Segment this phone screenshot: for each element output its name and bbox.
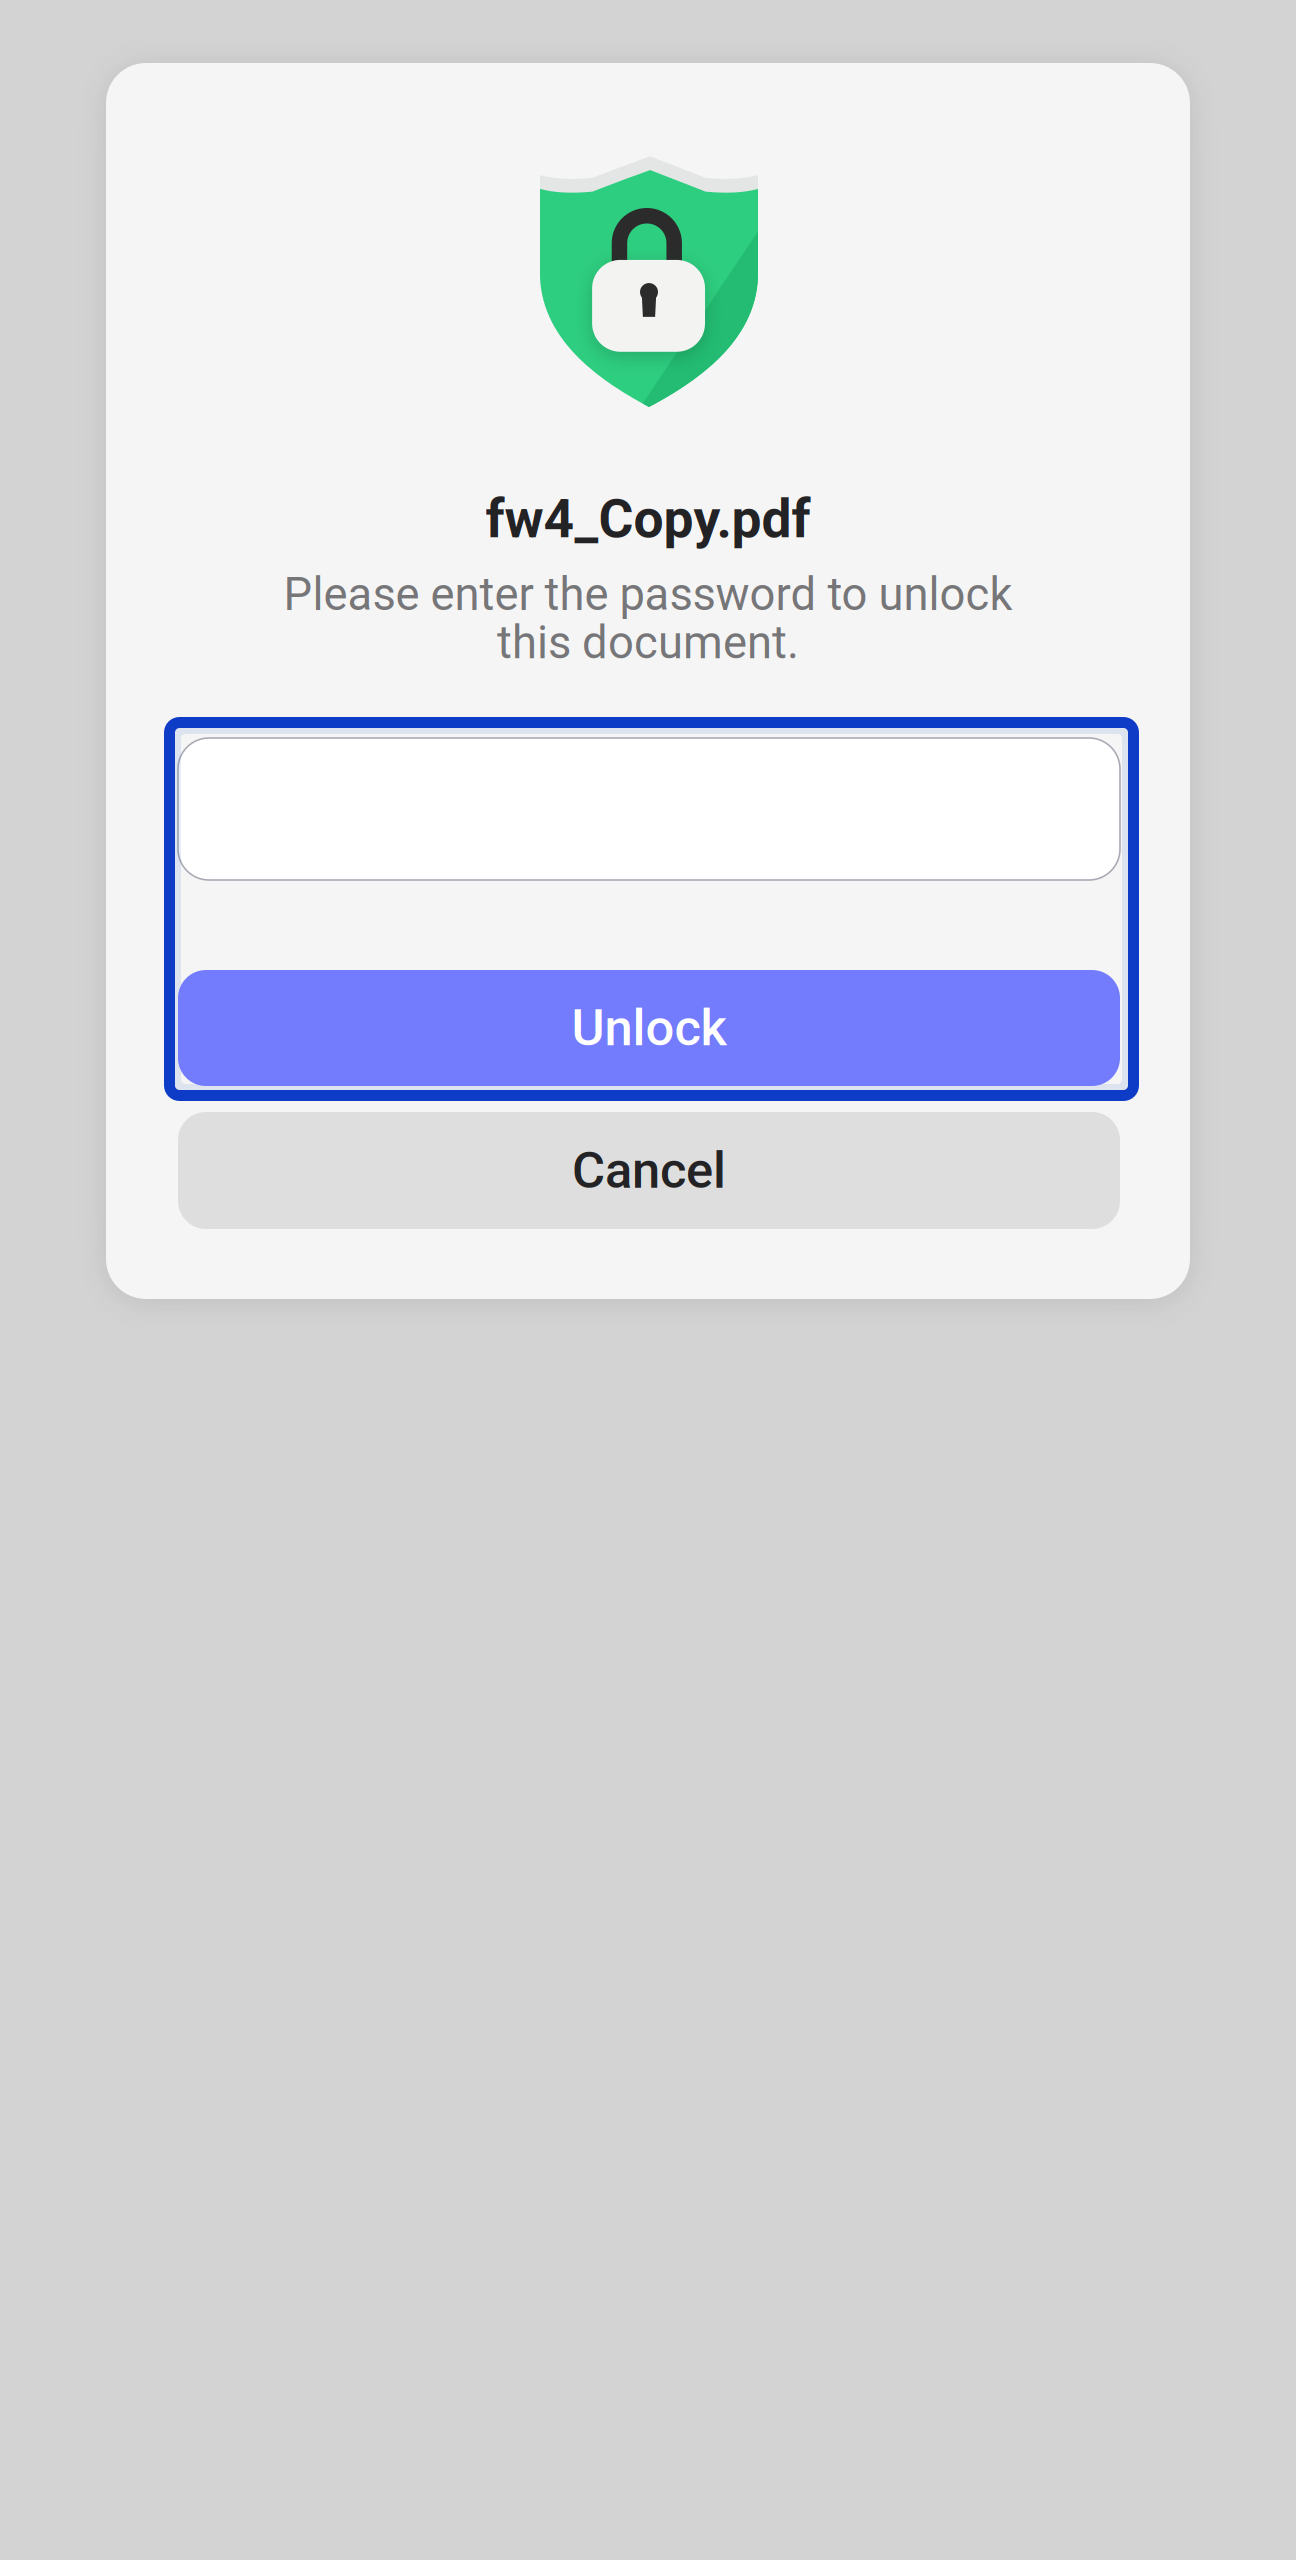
staticText: this document.: [497, 616, 799, 669]
staticText: Please enter the password to unlock: [283, 568, 1012, 621]
button[interactable]: Unlock: [178, 970, 1120, 1086]
staticText: Unlock: [571, 998, 726, 1058]
button[interactable]: Password: [178, 738, 1120, 880]
button[interactable]: Cancel: [178, 1112, 1120, 1229]
staticText: Cancel: [572, 1141, 726, 1200]
staticText: fw4_Copy.pdf: [485, 488, 810, 550]
